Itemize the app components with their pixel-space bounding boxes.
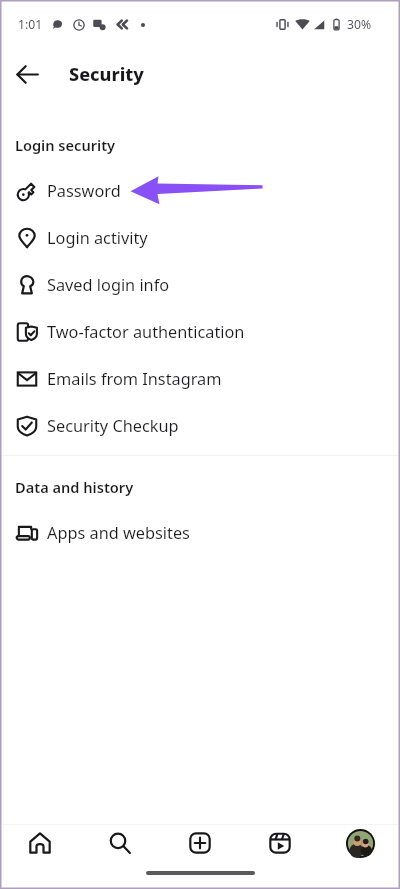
- button[interactable]: Security Checkup: [0, 402, 400, 449]
- staticText: 1:01: [18, 16, 43, 33]
- staticText: Login security: [15, 135, 116, 155]
- button[interactable]: Emails from Instagram: [0, 355, 400, 402]
- button[interactable]: Login activity: [0, 214, 400, 261]
- button[interactable]: Password: [0, 167, 400, 214]
- staticText: Password: [47, 180, 121, 202]
- button[interactable]: Back: [6, 53, 48, 95]
- button[interactable]: Apps and websites: [0, 509, 400, 556]
- staticText: Login activity: [47, 227, 148, 249]
- staticText: Two-factor authentication: [47, 321, 245, 343]
- staticText: Security Checkup: [47, 415, 179, 437]
- staticText: Data and history: [15, 477, 134, 497]
- button[interactable]: Reels: [240, 825, 320, 861]
- button[interactable]: Two-factor authentication: [0, 308, 400, 355]
- staticText: Emails from Instagram: [47, 368, 222, 390]
- button[interactable]: Search: [80, 825, 160, 861]
- button[interactable]: Profile: [320, 825, 400, 861]
- staticText: Security: [69, 62, 144, 87]
- staticText: Apps and websites: [47, 522, 190, 544]
- button[interactable]: Home: [0, 825, 80, 861]
- button[interactable]: Saved login info: [0, 261, 400, 308]
- staticText: Saved login info: [47, 274, 170, 296]
- button[interactable]: Create: [160, 825, 240, 861]
- staticText: 30%: [347, 16, 372, 33]
